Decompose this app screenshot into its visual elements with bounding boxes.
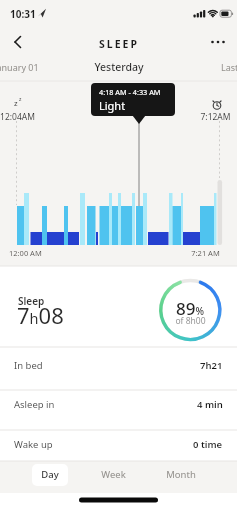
staticText: Last [221,61,237,73]
button[interactable] [32,464,68,486]
button[interactable]: Week [88,468,138,481]
staticText: 7h08 [17,300,64,330]
button[interactable]: In bed [0,346,237,384]
button[interactable] [204,32,232,54]
staticText: 12:04AM [0,111,35,123]
staticText: 7h21 [200,359,223,372]
staticText: 7:12AM [200,111,231,123]
staticText: January 01 [0,61,39,73]
button[interactable]: Wake up [0,430,237,459]
staticText: z [19,96,22,103]
staticText: SLEEP [99,37,139,51]
staticText: 10:31 [10,7,36,21]
button[interactable]: Yesterday [79,60,159,74]
staticText: In bed [14,359,43,372]
staticText: Asleep in [14,398,55,411]
staticText: Day [41,468,59,481]
button[interactable]: Asleep in [0,390,237,419]
staticText: Yesterday [94,60,144,74]
staticText: z [14,98,18,108]
staticText: Light [99,98,126,113]
staticText: 12:00 AM [9,248,42,258]
button[interactable]: Day [28,468,72,481]
staticText: 4:18 AM - 4:33 AM [99,87,161,97]
button[interactable] [6,32,32,54]
button[interactable]: 4:18 AM - 4:33 AM [91,83,175,116]
staticText: 0 time [193,438,223,451]
button[interactable]: Month [156,468,206,481]
staticText: 7:21 AM [191,248,220,258]
staticText: 89% [176,297,204,320]
staticText: Sleep [18,294,45,308]
staticText: Week [101,468,126,481]
staticText: Wake up [14,438,53,451]
staticText: of 8h00 [175,315,206,327]
staticText: Month [166,468,196,481]
staticText: 4 min [197,398,223,411]
